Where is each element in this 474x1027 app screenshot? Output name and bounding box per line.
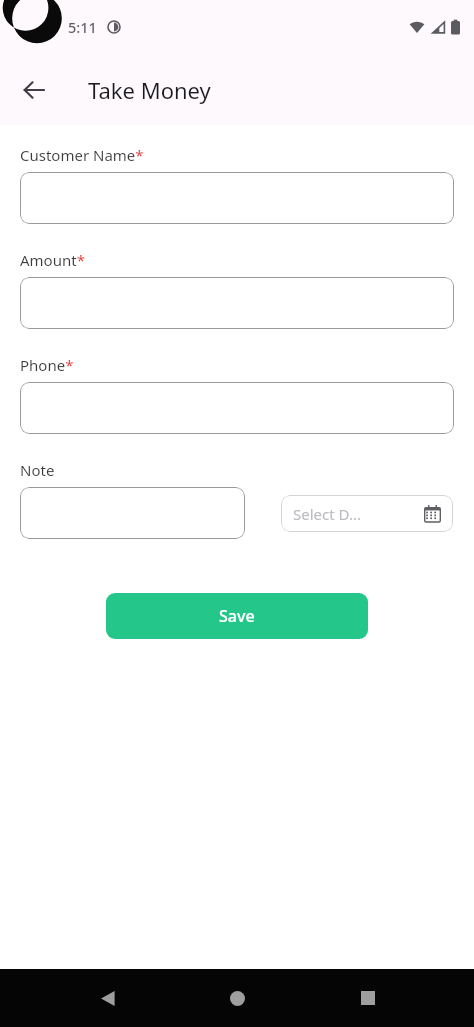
staticText: Customer Name* <box>20 145 144 165</box>
button[interactable]: Save <box>106 593 368 639</box>
button[interactable] <box>20 277 454 329</box>
button[interactable]: Home <box>213 974 261 1022</box>
button[interactable] <box>20 172 454 224</box>
staticText: Note <box>20 460 55 480</box>
staticText: Select D... <box>293 504 361 524</box>
button[interactable]: Recent apps <box>344 974 392 1022</box>
staticText: Take Money <box>88 75 211 105</box>
button[interactable]: Select D... <box>281 495 453 532</box>
button[interactable] <box>20 487 245 539</box>
staticText: Amount* <box>20 250 85 270</box>
staticText: Save <box>219 605 255 627</box>
button[interactable]: Back <box>83 974 131 1022</box>
other: Select date <box>424 505 441 522</box>
button[interactable]: Back <box>10 66 58 114</box>
button[interactable] <box>20 382 454 434</box>
staticText: Phone* <box>20 355 74 375</box>
staticText: 5:11 <box>68 17 97 37</box>
